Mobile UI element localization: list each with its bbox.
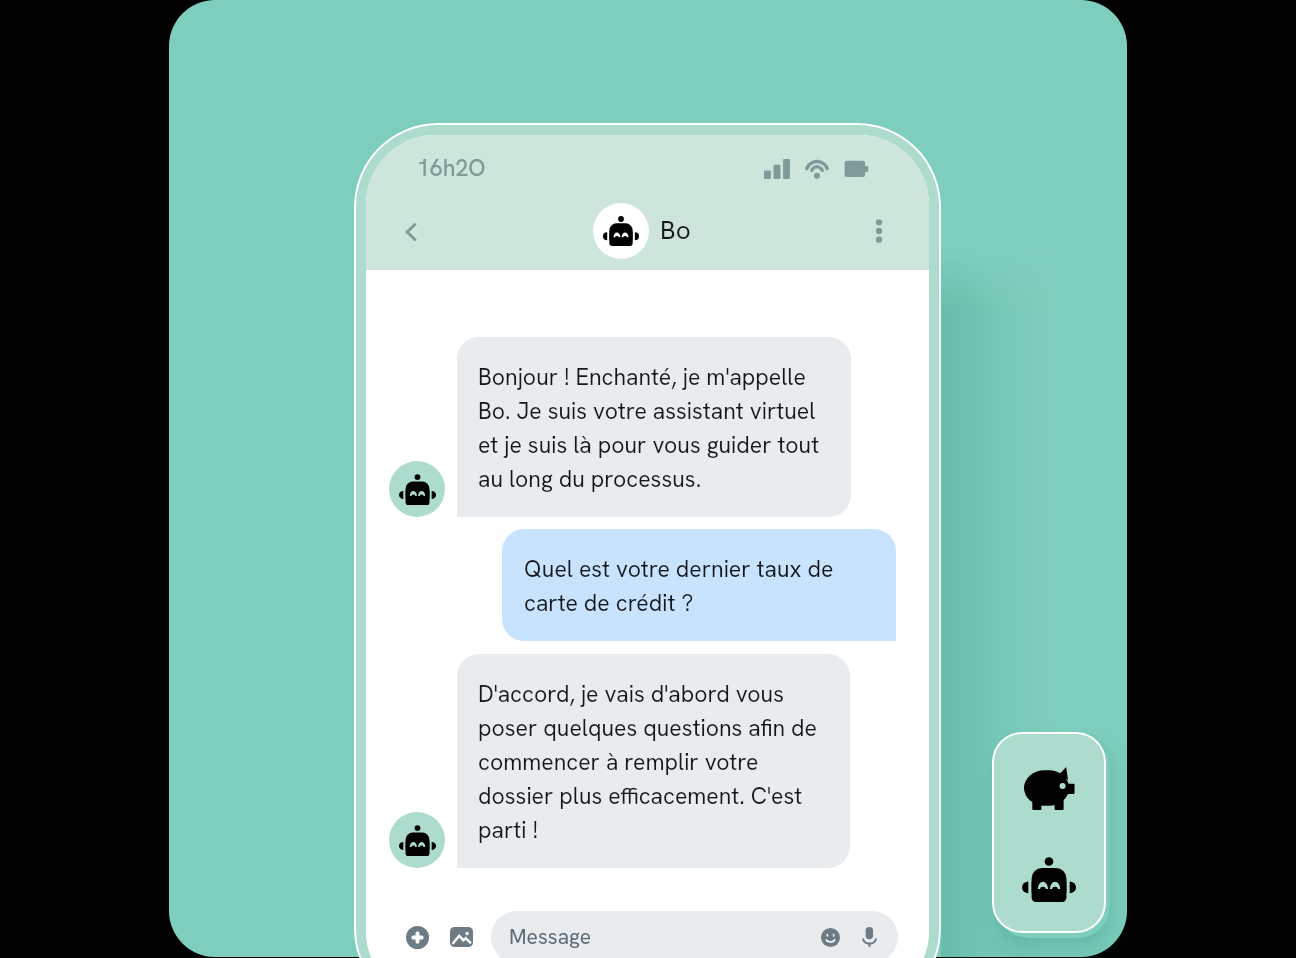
staticText: Message	[509, 923, 591, 950]
button[interactable]: Emoji	[821, 928, 840, 947]
button[interactable]: Quel est votre dernier taux de carte de …	[502, 529, 896, 641]
other: Bo avatar	[389, 461, 445, 517]
button[interactable]: D'accord, je vais d'abord vous poser que…	[457, 654, 850, 868]
button[interactable]: Send image	[450, 927, 473, 947]
button[interactable]: Message	[491, 911, 898, 958]
button[interactable]: Assistant	[1014, 849, 1084, 909]
staticText: D'accord, je vais d'abord vous poser que…	[478, 676, 832, 846]
staticText: Quel est votre dernier taux de carte de …	[524, 551, 878, 619]
button[interactable]: Voice message	[862, 927, 877, 947]
staticText: 16h2O	[417, 153, 486, 183]
button[interactable]: Bonjour ! Enchanté, je m'appelle Bo. Je …	[457, 337, 851, 517]
staticText: Bo	[660, 213, 691, 247]
other: Bo avatar	[389, 812, 445, 868]
button[interactable]: Add attachment	[406, 926, 429, 949]
button[interactable]: More options	[859, 211, 899, 251]
button[interactable]: Savings	[1015, 759, 1083, 817]
staticText: Bonjour ! Enchanté, je m'appelle Bo. Je …	[478, 359, 833, 495]
button[interactable]: Back	[391, 212, 431, 252]
